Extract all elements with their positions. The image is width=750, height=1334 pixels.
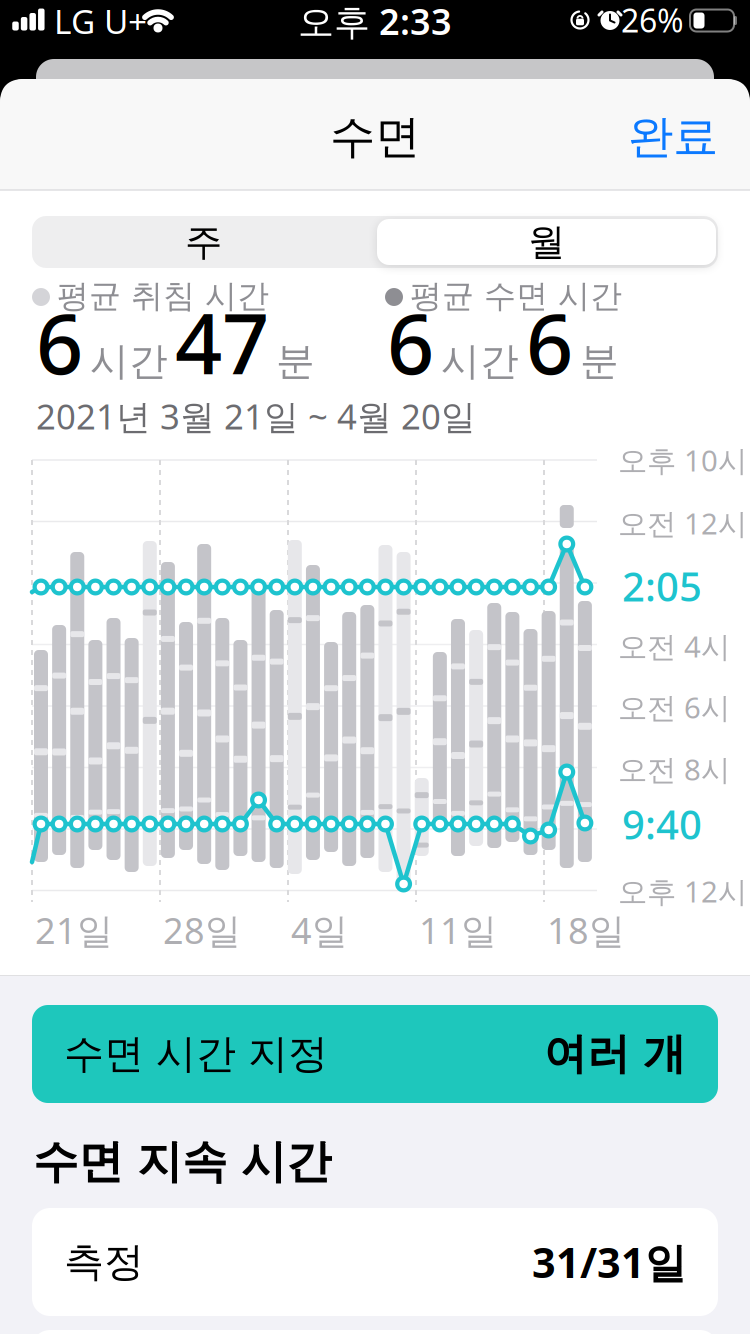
staticText: 시간 xyxy=(441,338,519,385)
staticText: 월 xyxy=(528,219,565,265)
staticText: 오전 12시 xyxy=(618,503,747,542)
button[interactable]: 월 xyxy=(377,219,716,265)
staticText: 11일 xyxy=(419,906,497,954)
button[interactable]: 완료 xyxy=(0,0,750,1334)
staticText: 18일 xyxy=(547,906,625,954)
staticText: 28일 xyxy=(163,906,241,954)
staticText: 측정 xyxy=(64,1237,144,1286)
staticText: 여러 개 xyxy=(544,1028,686,1080)
staticText: 21일 xyxy=(35,906,113,954)
staticText: 주 xyxy=(185,219,222,265)
staticText: 47 xyxy=(175,287,269,397)
staticText: 평균 수면 시간 xyxy=(410,276,622,316)
staticText: LG U+ xyxy=(54,0,147,43)
staticText: 수면 xyxy=(330,109,420,165)
staticText: 4일 xyxy=(291,906,348,954)
staticText: 평균 취침 시간 xyxy=(57,276,269,316)
staticText: 9:40 xyxy=(622,797,702,850)
staticText: 완료 xyxy=(628,109,718,165)
staticText: 6 xyxy=(526,287,573,397)
staticText: 26% xyxy=(621,0,684,41)
staticText: 6 xyxy=(36,287,83,397)
staticText: 오후 2:33 xyxy=(298,0,452,45)
staticText: 31/31일 xyxy=(532,1235,686,1289)
staticText: 오후 10시 xyxy=(618,440,747,479)
staticText: 분 xyxy=(276,338,315,385)
staticText: 수면 지속 시간 xyxy=(33,1134,331,1190)
staticText: 오전 6시 xyxy=(618,687,730,726)
staticText: 시간 xyxy=(90,338,168,385)
staticText: 분 xyxy=(580,338,619,385)
staticText: 2021년 3월 21일 ~ 4월 20일 xyxy=(36,393,476,439)
button[interactable]: 수면 시간 지정 xyxy=(32,1005,718,1103)
staticText: 오후 12시 xyxy=(618,871,747,910)
button[interactable]: 측정 xyxy=(32,1208,718,1316)
staticText: 2:05 xyxy=(622,559,702,612)
button[interactable]: 주 xyxy=(32,216,375,268)
staticText: 오전 8시 xyxy=(618,749,730,788)
staticText: 오전 4시 xyxy=(618,626,730,665)
staticText: 수면 시간 지정 xyxy=(64,1029,328,1078)
staticText: 6 xyxy=(387,287,434,397)
